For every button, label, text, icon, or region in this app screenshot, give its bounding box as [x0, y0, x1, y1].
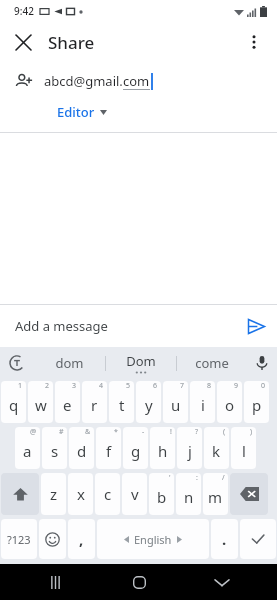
staticText: h [158, 441, 168, 461]
button[interactable]: Backspace [230, 473, 268, 515]
staticText: d [77, 441, 87, 461]
staticText: s [51, 441, 59, 461]
button[interactable]: Translate [0, 347, 34, 379]
button[interactable]: Shift [1, 473, 39, 515]
button[interactable]: 0 [244, 381, 269, 423]
staticText: v [131, 484, 139, 504]
staticText: t [119, 395, 125, 415]
staticText: m [208, 487, 223, 507]
button[interactable]: ?123 [1, 519, 37, 559]
button[interactable]: Voice input [247, 347, 277, 379]
button[interactable]: More options [237, 25, 271, 59]
button[interactable]: ' [149, 473, 174, 515]
button[interactable]: x [68, 473, 93, 515]
button[interactable]: Editor [57, 100, 107, 124]
button[interactable]: z [41, 473, 66, 515]
button[interactable]: 7 [163, 381, 188, 423]
staticText: 9 [234, 381, 239, 391]
button[interactable]: : [176, 473, 201, 515]
button[interactable]: @ [15, 427, 40, 469]
staticText: English [134, 532, 172, 547]
staticText: - [142, 427, 145, 437]
button[interactable]: c [95, 473, 120, 515]
button[interactable]: & [69, 427, 94, 469]
staticText: 3 [72, 381, 77, 391]
staticText: o [225, 395, 235, 415]
staticText: ' [169, 473, 171, 483]
button[interactable]: ! [150, 427, 175, 469]
staticText: @ [30, 427, 37, 437]
staticText: ( [223, 427, 226, 437]
staticText: # [59, 427, 64, 437]
button[interactable]: abcd@gmail. [0, 62, 277, 100]
button[interactable]: Add a message [0, 305, 235, 347]
staticText: c [104, 484, 112, 504]
button[interactable]: ? [177, 427, 202, 469]
staticText: Dom [126, 352, 156, 370]
button[interactable]: 3 [55, 381, 80, 423]
staticText: l [242, 441, 246, 461]
button[interactable]: come [177, 347, 247, 379]
staticText: q [9, 395, 19, 415]
button[interactable]: 4 [82, 381, 107, 423]
button[interactable]: - [123, 427, 148, 469]
staticText: dom [55, 354, 84, 372]
button[interactable]: , [68, 519, 95, 559]
staticText: : [196, 473, 198, 483]
button[interactable]: 2 [28, 381, 53, 423]
button[interactable]: ) [231, 427, 256, 469]
button[interactable]: Home [124, 567, 154, 597]
button[interactable]: / [203, 473, 228, 515]
button[interactable]: Enter [240, 519, 276, 559]
button[interactable]: Back [207, 567, 237, 597]
button[interactable]: Send [235, 305, 277, 347]
staticText: Editor [57, 103, 95, 121]
staticText: x [77, 484, 85, 504]
staticText: ! [170, 427, 172, 437]
staticText: f [106, 441, 112, 461]
staticText: 5 [126, 381, 131, 391]
button[interactable]: v [122, 473, 147, 515]
button[interactable]: dom [34, 347, 105, 379]
staticText: 0 [261, 381, 266, 391]
staticText: 8 [207, 381, 212, 391]
button[interactable]: 8 [190, 381, 215, 423]
staticText: ? [195, 427, 199, 437]
button[interactable]: 1 [1, 381, 26, 423]
staticText: 2 [45, 381, 50, 391]
button[interactable]: . [211, 519, 238, 559]
staticText: e [63, 395, 72, 415]
staticText: a [23, 441, 32, 461]
staticText: r [91, 395, 98, 415]
staticText: Add a message [15, 317, 108, 335]
button[interactable]: 6 [136, 381, 161, 423]
staticText: i [201, 395, 205, 415]
staticText: / [222, 473, 225, 483]
staticText: 1 [18, 381, 23, 391]
staticText: com [123, 72, 150, 90]
staticText: u [171, 395, 181, 415]
staticText: 4 [99, 381, 104, 391]
staticText: ?123 [7, 532, 31, 547]
button[interactable]: Emoji [39, 519, 66, 559]
button[interactable]: 5 [109, 381, 134, 423]
button[interactable]: 9 [217, 381, 242, 423]
button[interactable]: English [97, 519, 209, 559]
button[interactable]: Dom [106, 347, 176, 379]
button[interactable]: ( [204, 427, 229, 469]
button[interactable]: Close [6, 25, 40, 59]
staticText: j [188, 441, 192, 461]
staticText: b [157, 487, 167, 507]
staticText: g [131, 441, 141, 461]
staticText: & [85, 427, 91, 437]
button[interactable]: * [96, 427, 121, 469]
staticText: 9:42 [14, 4, 34, 18]
staticText: , [79, 529, 84, 549]
staticText: 6 [153, 381, 158, 391]
staticText: abcd@gmail. [44, 72, 123, 90]
button[interactable]: Recent apps [40, 567, 70, 597]
staticText: * [114, 427, 118, 437]
button[interactable]: # [42, 427, 67, 469]
staticText: 7 [180, 381, 185, 391]
staticText: y [145, 395, 153, 415]
